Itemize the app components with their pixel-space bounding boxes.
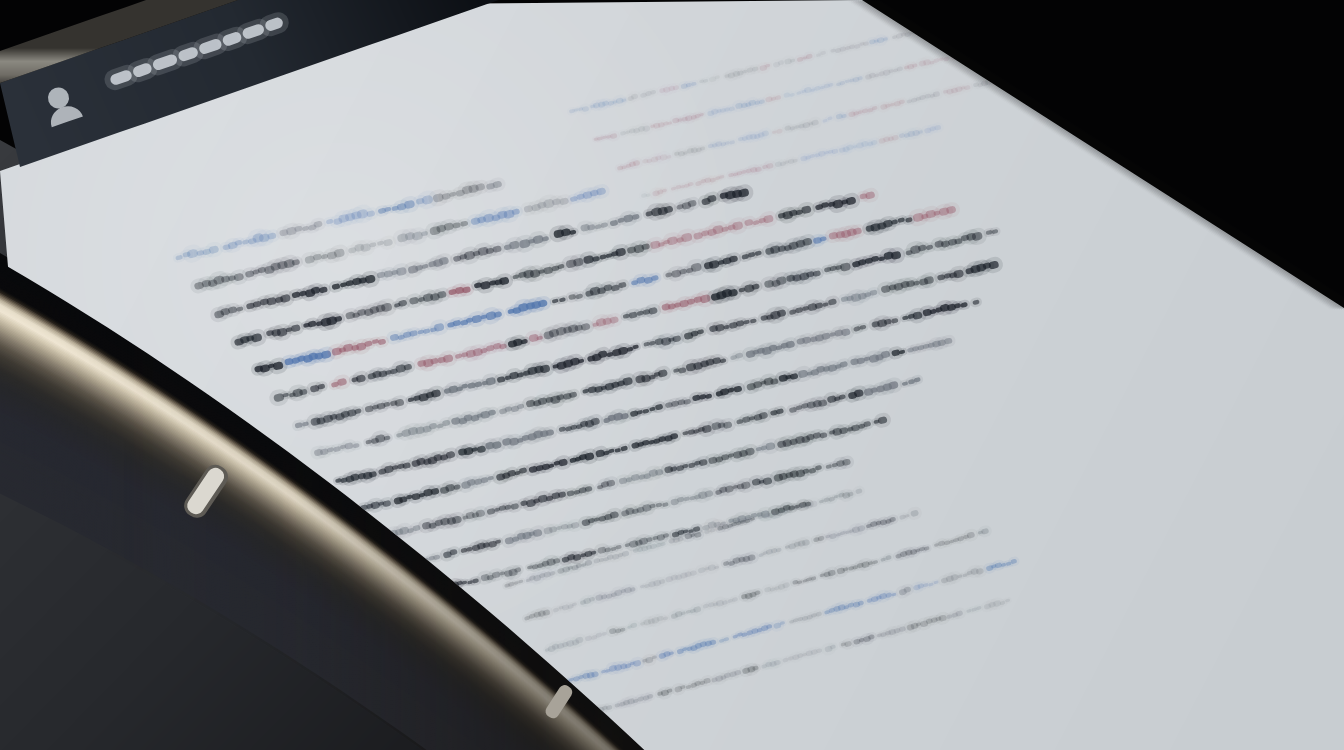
button[interactable]: Status bar <box>0 40 340 160</box>
button[interactable]: Side button <box>176 450 236 526</box>
button[interactable]: Message body <box>170 190 1070 660</box>
